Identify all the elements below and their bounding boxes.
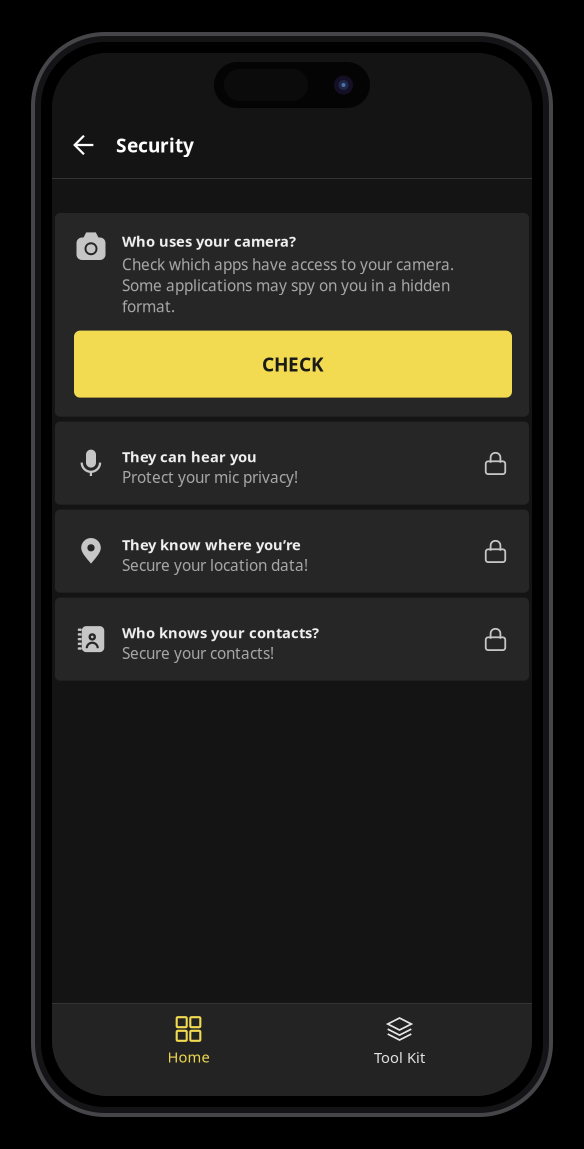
button[interactable]: They can hear you [55,422,529,505]
staticText: CHECK [262,351,324,377]
staticText: Who uses your camera? [122,231,296,251]
button[interactable]: They know where you’re [55,510,529,593]
button[interactable]: Back [63,123,105,167]
staticText: Secure your location data! [122,555,308,576]
button[interactable]: Tool Kit [332,1016,467,1068]
staticText: Check which apps have access to your cam… [122,254,454,317]
staticText: Tool Kit [374,1047,425,1067]
staticText: Protect your mic privacy! [122,467,298,488]
staticText: Secure your contacts! [122,643,274,664]
button[interactable]: CHECK [74,331,512,398]
staticText: They can hear you [122,447,257,467]
staticText: They know where you’re [122,535,301,555]
button[interactable]: Home [121,1016,256,1068]
staticText: Security [116,132,194,158]
staticText: Who knows your contacts? [122,623,319,643]
staticText: Home [167,1047,209,1067]
button[interactable]: Who knows your contacts? [55,598,529,681]
